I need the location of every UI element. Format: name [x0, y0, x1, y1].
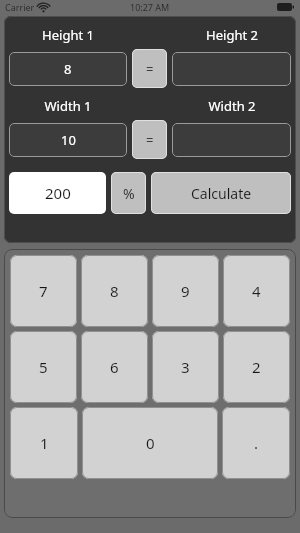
button[interactable]: 1	[10, 407, 78, 479]
staticText: Carrier	[5, 1, 35, 13]
staticText: .	[254, 433, 259, 453]
button[interactable]	[172, 52, 291, 86]
button[interactable]: 10	[9, 123, 127, 157]
button[interactable]: 8	[81, 255, 148, 327]
staticText: 5	[39, 357, 48, 377]
staticText: 10	[61, 131, 76, 149]
staticText: 7	[39, 281, 48, 301]
staticText: %	[123, 184, 135, 203]
button[interactable]: 3	[152, 331, 219, 403]
button[interactable]: 8	[9, 52, 127, 86]
button[interactable]: 9	[152, 255, 219, 327]
staticText: Width 2	[168, 97, 296, 115]
staticText: 1	[40, 433, 49, 453]
staticText: 2	[252, 357, 261, 377]
button[interactable]: 6	[81, 331, 148, 403]
button[interactable]: Percent	[111, 172, 146, 214]
staticText: 9	[181, 281, 190, 301]
staticText: 4	[252, 281, 261, 301]
button[interactable]: Equals width	[132, 120, 167, 159]
button[interactable]: Calculate	[151, 172, 291, 214]
button[interactable]: 200	[9, 172, 106, 214]
button[interactable]: .	[222, 407, 290, 479]
staticText: Height 1	[4, 26, 132, 44]
button[interactable]: Equals height	[132, 49, 167, 88]
staticText: 0	[146, 433, 155, 453]
button[interactable]: 4	[223, 255, 290, 327]
staticText: =	[146, 131, 154, 149]
staticText: 3	[181, 357, 190, 377]
button[interactable]: 5	[10, 331, 77, 403]
button[interactable]: 7	[10, 255, 77, 327]
staticText: 8	[64, 60, 72, 78]
staticText: Calculate	[191, 184, 252, 203]
staticText: Height 2	[168, 26, 296, 44]
button[interactable]	[172, 123, 291, 157]
staticText: 8	[110, 281, 119, 301]
staticText: 200	[45, 183, 71, 203]
staticText: Width 1	[4, 97, 132, 115]
button[interactable]: 2	[223, 331, 290, 403]
staticText: 10:27 AM	[130, 1, 170, 13]
staticText: =	[146, 60, 154, 78]
staticText: 6	[110, 357, 119, 377]
button[interactable]: 0	[82, 407, 218, 479]
